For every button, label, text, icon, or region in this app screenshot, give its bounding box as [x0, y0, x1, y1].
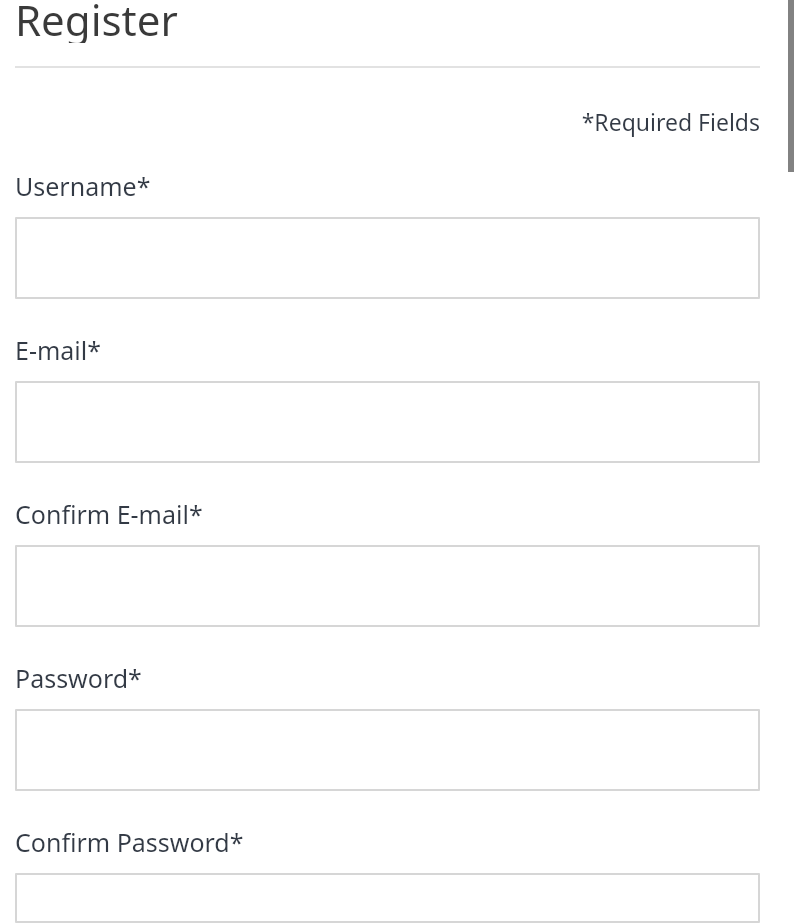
- staticText: Confirm E-mail*: [15, 497, 203, 531]
- staticText: Password*: [15, 661, 142, 695]
- staticText: Register: [15, 0, 178, 43]
- staticText: E-mail*: [15, 333, 102, 367]
- staticText: *Required Fields: [15, 106, 760, 137]
- staticText: Username*: [15, 169, 151, 203]
- staticText: Confirm Password*: [15, 825, 244, 859]
- button[interactable]: Username*: [15, 217, 760, 299]
- button[interactable]: Confirm E-mail*: [15, 545, 760, 627]
- button[interactable]: Confirm Password*: [15, 873, 760, 923]
- button[interactable]: E-mail*: [15, 381, 760, 463]
- button[interactable]: Password*: [15, 709, 760, 791]
